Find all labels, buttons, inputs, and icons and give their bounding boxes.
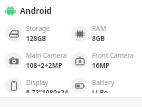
button[interactable]: Main Camera bbox=[5, 47, 71, 74]
staticText: 128GB bbox=[26, 34, 47, 43]
staticText: Li-Po 5000mAh bbox=[92, 88, 138, 93]
staticText: Battery bbox=[92, 78, 115, 87]
other: Android bbox=[5, 5, 16, 16]
staticText: 8GB bbox=[92, 34, 105, 43]
staticText: Front Camera bbox=[92, 51, 134, 60]
staticText: Android bbox=[20, 5, 52, 16]
other: Battery bbox=[71, 78, 88, 93]
staticText: Main Camera bbox=[26, 51, 67, 60]
button[interactable]: RAM bbox=[71, 20, 138, 47]
staticText: RAM bbox=[92, 24, 107, 33]
staticText: Storage bbox=[26, 24, 50, 33]
staticText: 6.72"1080x2400p bbox=[26, 88, 71, 93]
button[interactable]: Android bbox=[5, 4, 138, 17]
button[interactable]: Front Camera bbox=[71, 47, 138, 74]
other: Main Camera bbox=[5, 52, 22, 69]
other: RAM bbox=[71, 25, 88, 42]
other: Front Camera bbox=[71, 52, 88, 69]
staticText: 108+2+2MP bbox=[26, 61, 63, 70]
staticText: 16MP bbox=[92, 61, 110, 70]
button[interactable]: Storage bbox=[5, 20, 71, 47]
staticText: Display bbox=[26, 78, 49, 87]
other: Storage bbox=[5, 25, 22, 42]
button[interactable]: Display bbox=[5, 74, 71, 97]
other: Display bbox=[5, 78, 22, 93]
button[interactable]: Battery bbox=[71, 74, 138, 97]
